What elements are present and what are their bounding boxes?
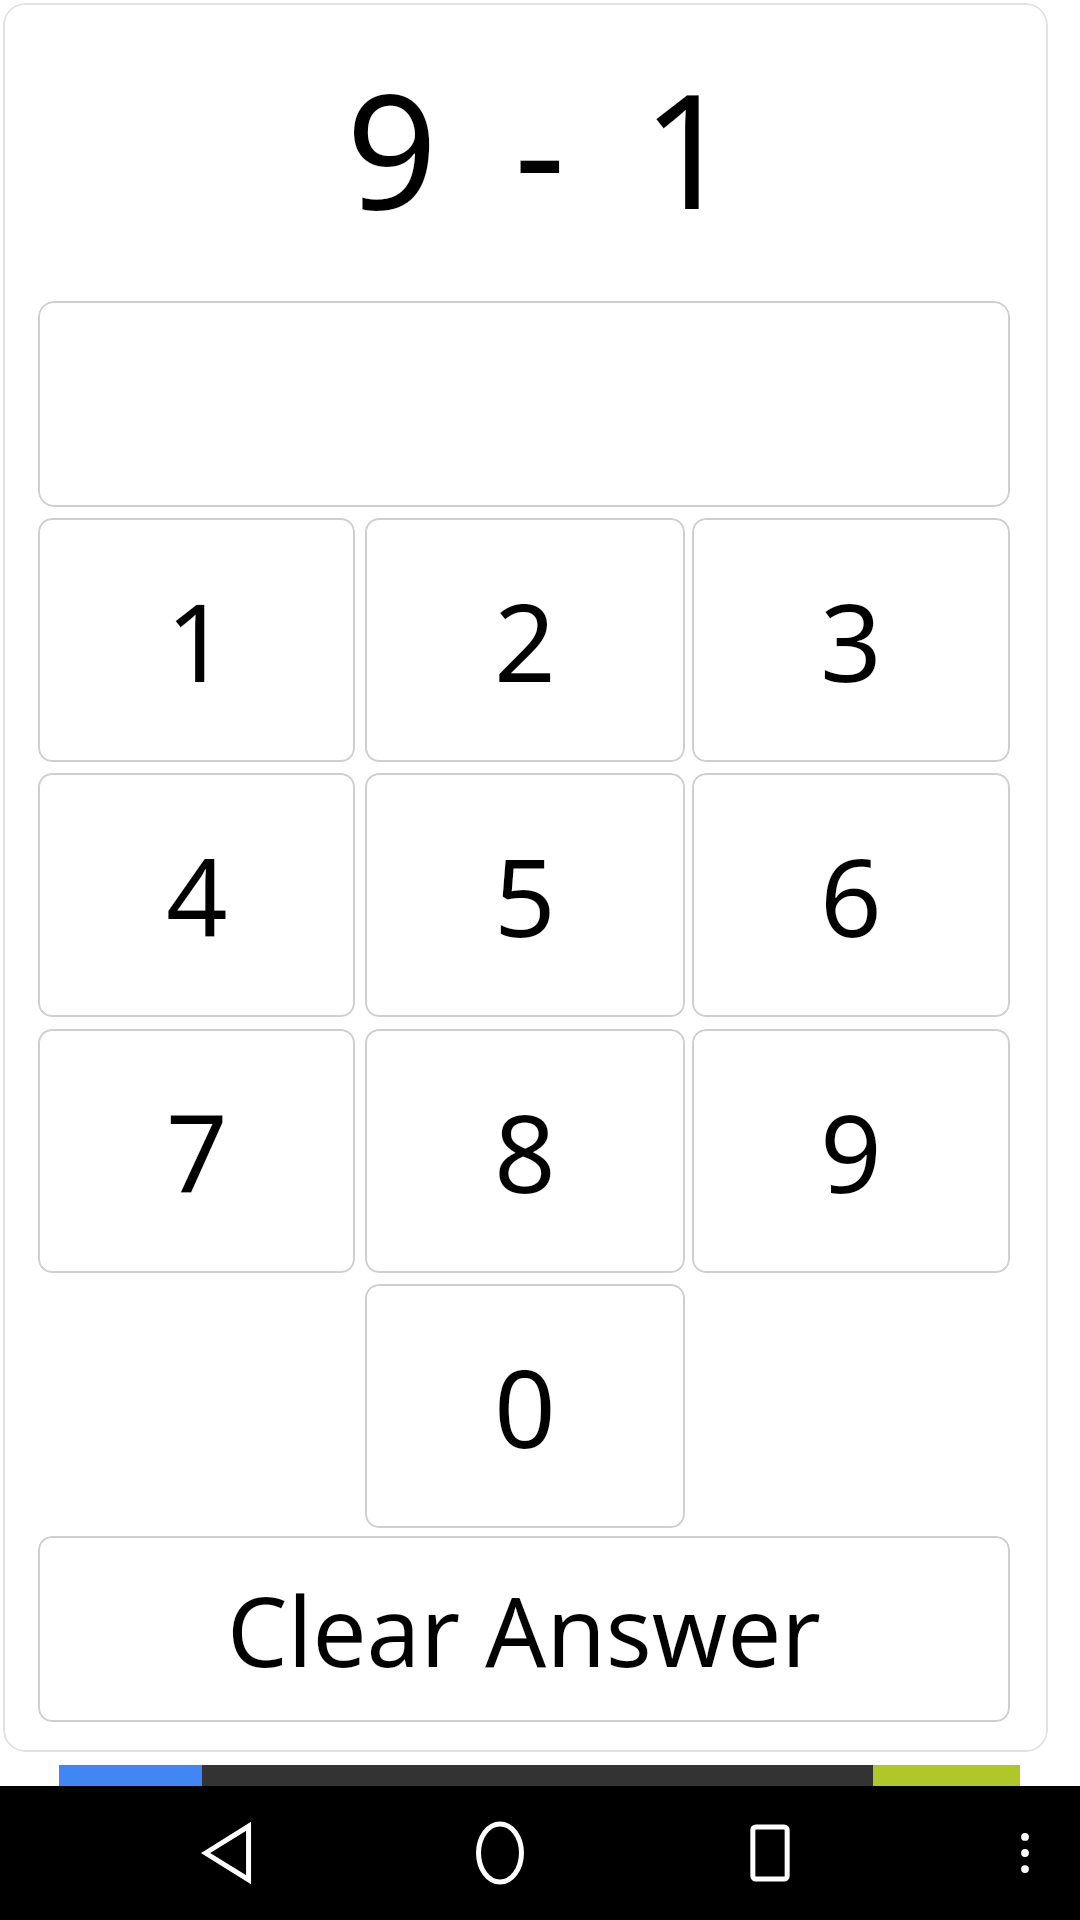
staticText: 1 bbox=[642, 38, 734, 248]
button[interactable]: 4 bbox=[38, 773, 355, 1017]
staticText: 5 bbox=[494, 822, 556, 969]
button[interactable]: 3 bbox=[692, 518, 1010, 762]
staticText: 1 bbox=[166, 567, 228, 714]
staticText: - bbox=[514, 38, 566, 248]
staticText: 7 bbox=[166, 1078, 228, 1225]
staticText: 6 bbox=[820, 822, 882, 969]
button[interactable]: 8 bbox=[365, 1029, 685, 1273]
button[interactable]: Home bbox=[460, 1813, 540, 1893]
staticText: 9 bbox=[820, 1078, 882, 1225]
staticText: 2 bbox=[494, 567, 556, 714]
staticText: 3 bbox=[820, 567, 882, 714]
staticText: Clear Answer bbox=[227, 1564, 821, 1695]
button[interactable]: 0 bbox=[365, 1284, 685, 1528]
button[interactable]: More options bbox=[985, 1813, 1065, 1893]
button[interactable]: 2 bbox=[365, 518, 685, 762]
staticText: 0 bbox=[494, 1333, 556, 1480]
button[interactable]: 6 bbox=[692, 773, 1010, 1017]
button[interactable]: 7 bbox=[38, 1029, 355, 1273]
staticText: 9 bbox=[346, 38, 438, 248]
button[interactable]: 5 bbox=[365, 773, 685, 1017]
button[interactable]: Back bbox=[190, 1813, 270, 1893]
button[interactable]: Recent apps bbox=[730, 1813, 810, 1893]
button[interactable]: Clear Answer bbox=[38, 1536, 1010, 1722]
staticText: 4 bbox=[166, 822, 228, 969]
button[interactable]: 9 bbox=[692, 1029, 1010, 1273]
button[interactable]: 1 bbox=[38, 518, 355, 762]
button[interactable]: Answer field bbox=[38, 301, 1010, 507]
staticText: 8 bbox=[494, 1078, 556, 1225]
